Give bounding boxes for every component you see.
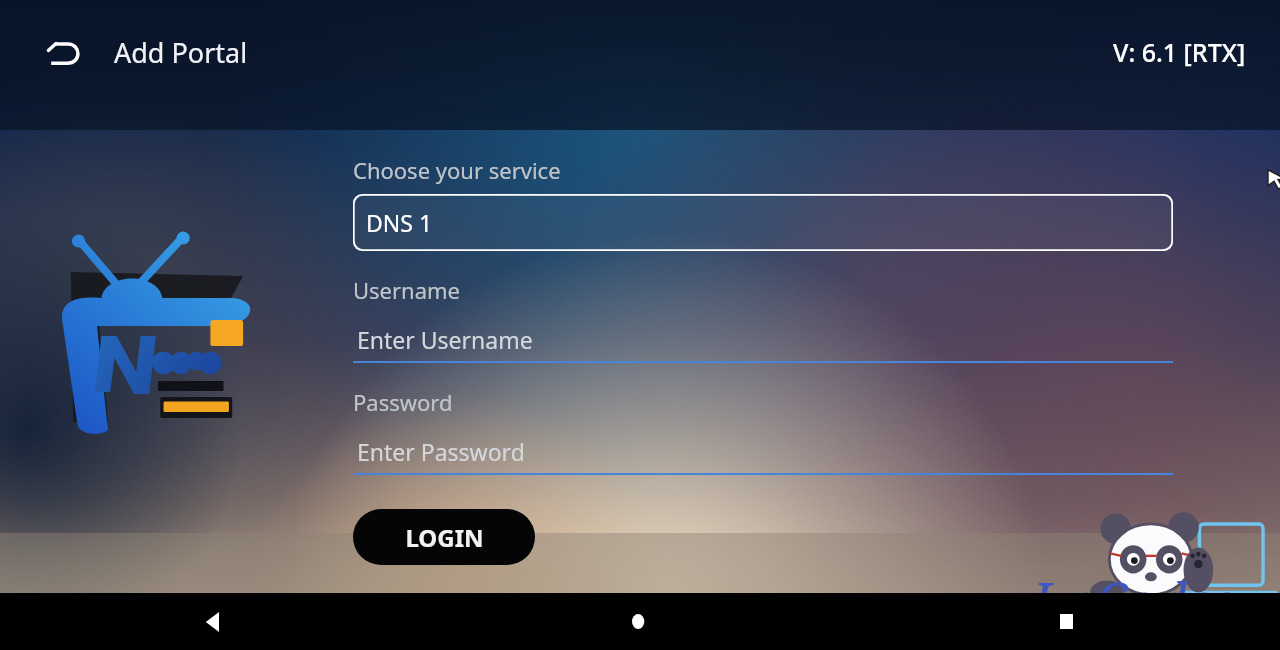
staticText: V: 6.1 [RTX] — [1113, 35, 1246, 69]
button[interactable]: Enter Password — [353, 429, 1173, 473]
button[interactable]: Enter Username — [353, 317, 1173, 361]
staticText: Choose your service — [353, 155, 561, 185]
button[interactable]: Back — [0, 593, 426, 650]
staticText: Add Portal — [114, 34, 248, 71]
button[interactable]: LOGIN — [353, 509, 535, 565]
button[interactable]: Back — [36, 24, 92, 80]
staticText: DNS 1 — [366, 207, 433, 238]
staticText: Enter Username — [357, 324, 533, 355]
button[interactable]: DNS 1 — [353, 194, 1173, 251]
staticText: LOGIN — [405, 521, 484, 554]
staticText: Enter Password — [357, 436, 525, 467]
staticText: LpCodes — [1032, 565, 1237, 636]
button[interactable]: Recent apps — [853, 593, 1280, 650]
staticText: Username — [353, 275, 461, 305]
button[interactable]: Home — [426, 593, 853, 650]
staticText: Password — [353, 387, 453, 417]
